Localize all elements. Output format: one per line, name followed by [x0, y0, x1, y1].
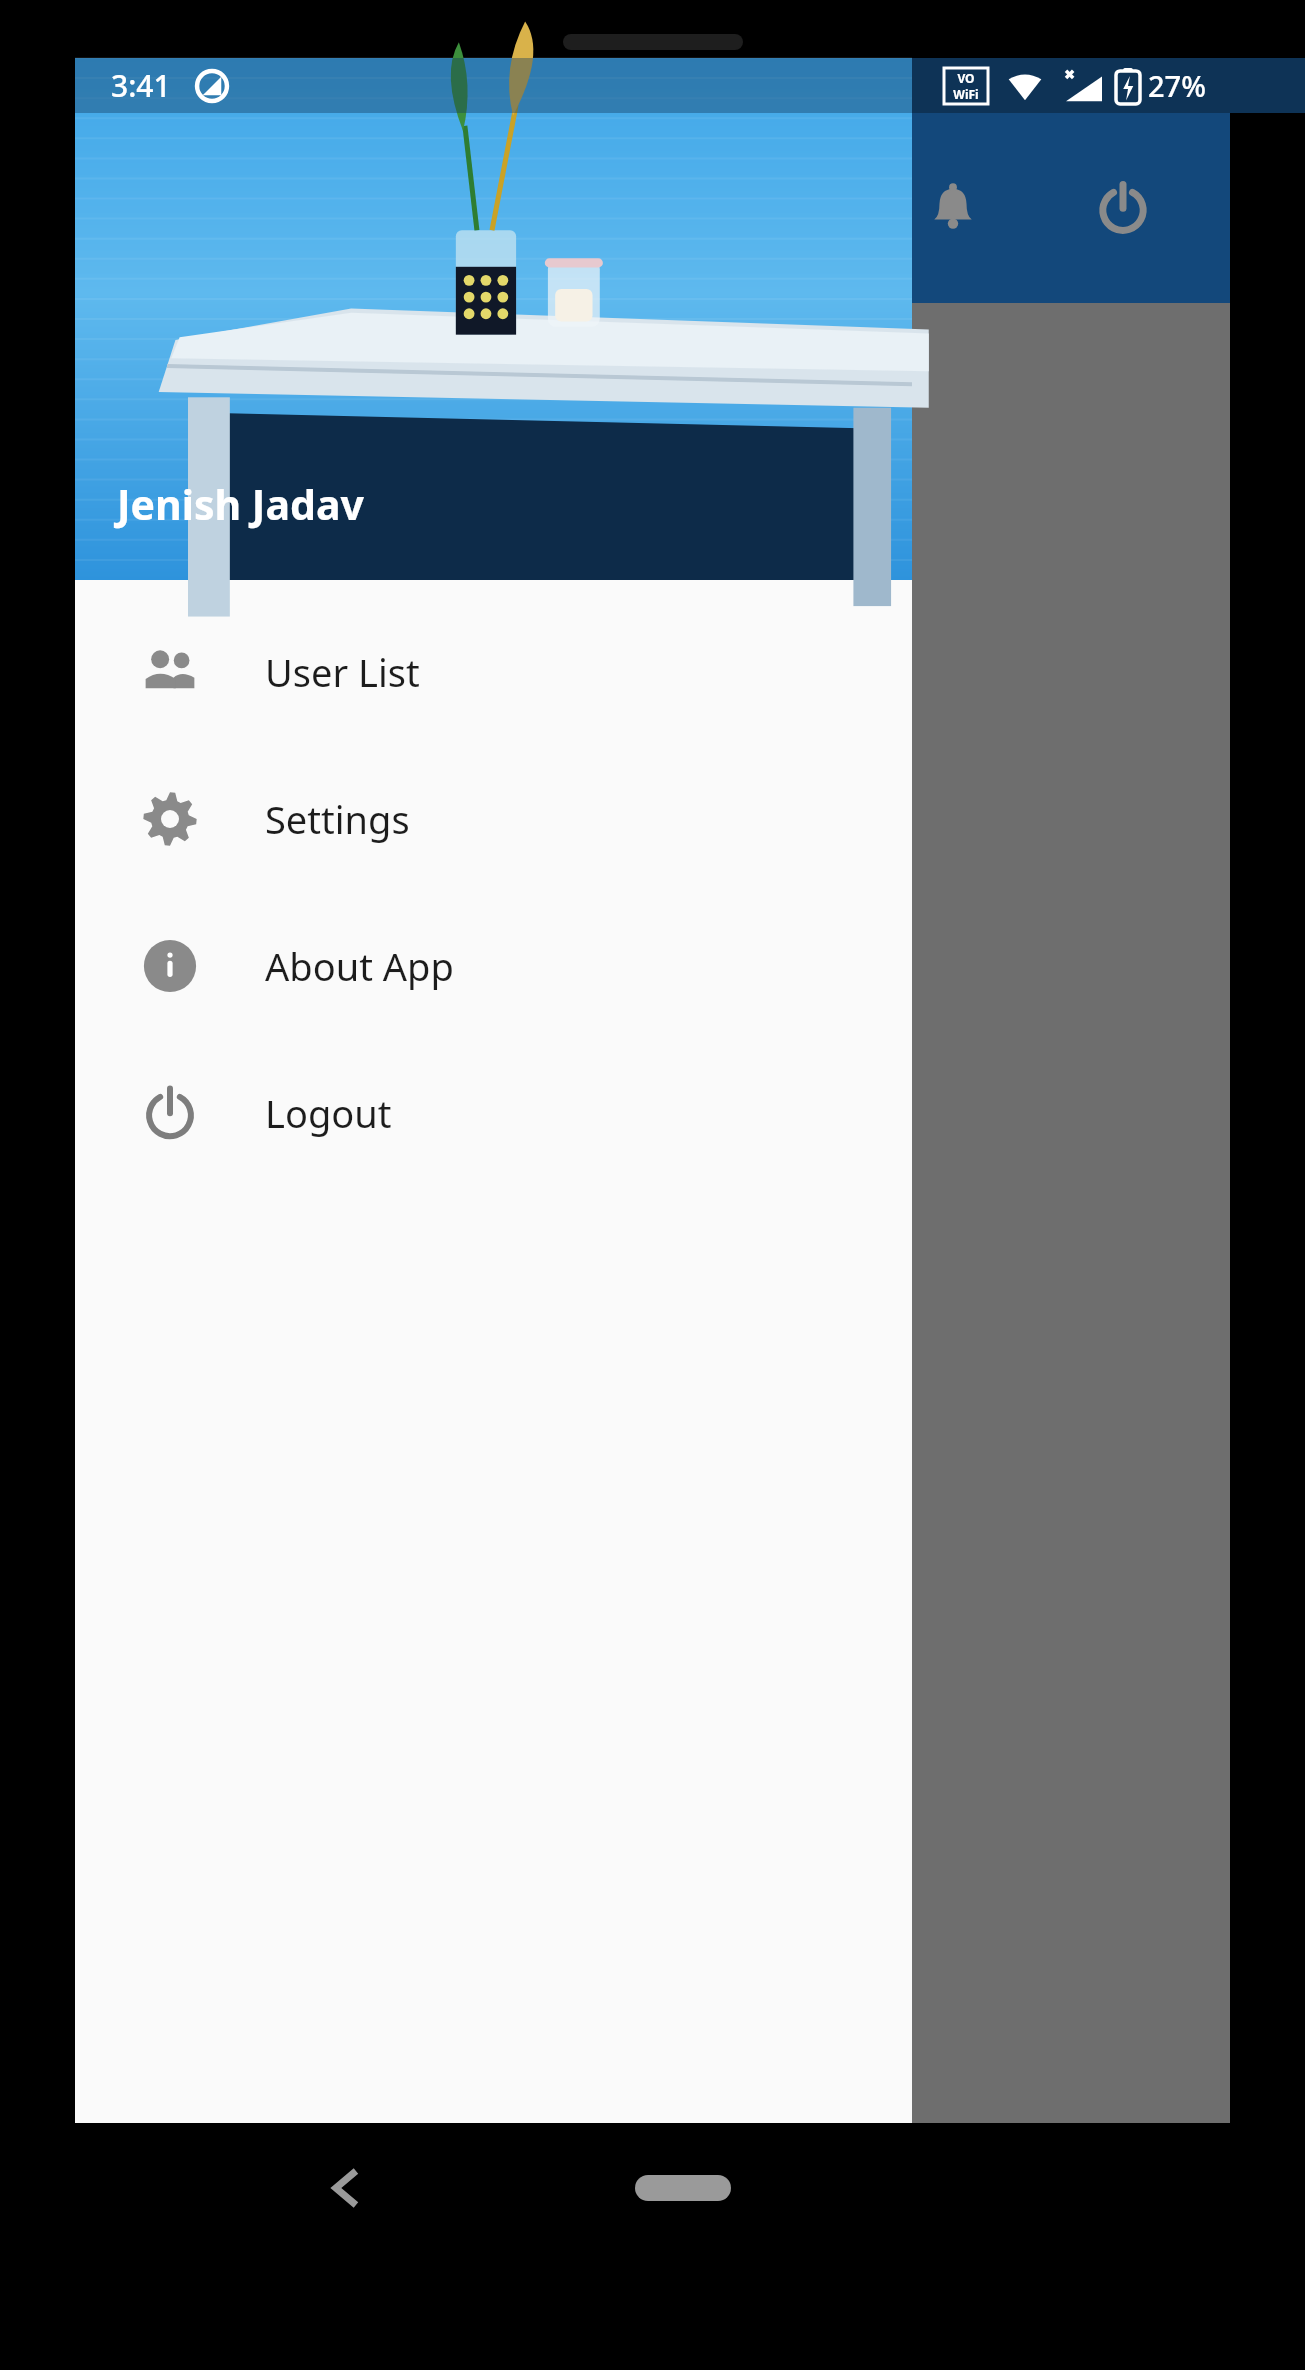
- button[interactable]: About App: [75, 892, 912, 1039]
- button[interactable]: Home: [628, 2163, 738, 2213]
- staticText: Jenish Jadav: [117, 476, 364, 532]
- staticText: 27%: [1148, 66, 1206, 105]
- staticText: VO: [957, 70, 975, 86]
- staticText: 3:41: [111, 65, 171, 106]
- staticText: About App: [265, 940, 454, 992]
- button[interactable]: Back: [300, 2143, 390, 2233]
- button[interactable]: Power: [1068, 153, 1178, 263]
- button[interactable]: Notifications: [898, 153, 1008, 263]
- staticText: Logout: [265, 1087, 392, 1139]
- staticText: Settings: [265, 793, 410, 845]
- button[interactable]: Logout: [75, 1039, 912, 1186]
- staticText: User List: [265, 646, 420, 698]
- staticText: WiFi: [953, 86, 979, 102]
- button[interactable]: User List: [75, 598, 912, 745]
- button[interactable]: Settings: [75, 745, 912, 892]
